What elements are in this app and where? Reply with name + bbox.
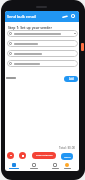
button[interactable]: START CAMPAIGN <box>32 152 56 159</box>
button[interactable] <box>60 163 74 169</box>
button[interactable] <box>27 163 41 169</box>
staticText: START CAMPAIGN <box>36 154 53 157</box>
staticText: Add <box>69 77 74 81</box>
button[interactable] <box>48 163 62 169</box>
button[interactable] <box>71 14 75 18</box>
button[interactable] <box>7 50 78 57</box>
staticText: Send bulk email <box>7 14 36 19</box>
button[interactable] <box>7 30 78 37</box>
button[interactable] <box>63 15 67 19</box>
staticText: Learn <box>64 155 71 158</box>
button[interactable] <box>7 163 21 169</box>
button[interactable]: Learn <box>61 153 73 160</box>
button[interactable] <box>19 152 26 159</box>
button[interactable] <box>7 40 78 47</box>
staticText: Total: $0.00 <box>59 146 76 150</box>
staticText: Step 1: Set up your sender <box>8 25 52 30</box>
button[interactable] <box>7 60 78 67</box>
button[interactable]: Add <box>64 76 78 82</box>
button[interactable] <box>7 152 14 159</box>
